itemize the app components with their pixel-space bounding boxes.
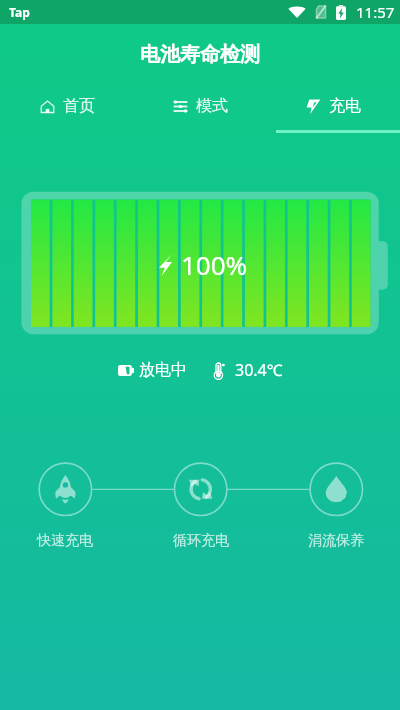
staticText: Tap: [9, 4, 30, 20]
button[interactable]: 模式: [134, 78, 267, 134]
button[interactable]: 充电: [267, 78, 400, 134]
button[interactable]: 循环充电: [163, 464, 239, 550]
button[interactable]: 首页: [0, 78, 134, 134]
staticText: 模式: [196, 96, 228, 116]
staticText: 11:57: [356, 2, 395, 22]
staticText: 100%: [181, 247, 248, 282]
staticText: 涓流保养: [308, 532, 364, 550]
staticText: 30.4℃: [235, 359, 283, 381]
staticText: 电池寿命检测: [140, 42, 260, 67]
staticText: 放电中: [139, 360, 187, 380]
staticText: 首页: [63, 96, 95, 116]
staticText: 充电: [329, 96, 361, 116]
button[interactable]: 涓流保养: [298, 464, 374, 550]
staticText: 循环充电: [173, 532, 229, 550]
staticText: 快速充电: [37, 532, 93, 550]
button[interactable]: 快速充电: [27, 464, 103, 550]
